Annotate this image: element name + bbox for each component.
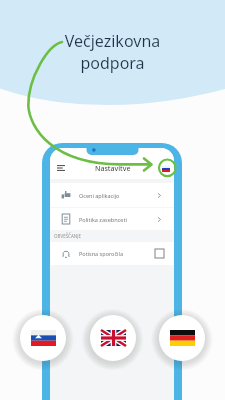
button[interactable]: Politika zasebnosti	[50, 208, 174, 230]
button[interactable]: English	[90, 315, 136, 361]
staticText: Politika zasebnosti	[79, 216, 127, 223]
button[interactable]: Change language	[159, 162, 173, 176]
button[interactable]: Menu	[54, 161, 68, 175]
button[interactable]: Slovenian	[20, 315, 66, 361]
staticText: Večjezikovna podpora	[0, 30, 225, 73]
button[interactable]: German	[159, 315, 205, 361]
button[interactable]: Potisna sporočila	[50, 242, 174, 265]
staticText: Oceni aplikacijo	[79, 192, 120, 199]
staticText: Potisna sporočila	[79, 250, 124, 257]
staticText: OBVEŠČANJE	[54, 233, 81, 239]
staticText: Nastavitve	[95, 164, 131, 174]
button[interactable]: Oceni aplikacijo	[50, 183, 174, 207]
